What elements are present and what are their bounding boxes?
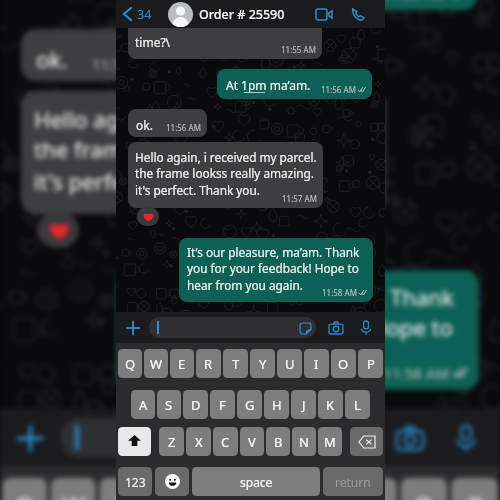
staticText: E xyxy=(178,355,186,373)
staticText: I xyxy=(314,355,319,373)
button[interactable]: Camera xyxy=(326,318,346,338)
button[interactable]: P xyxy=(358,349,383,378)
staticText: L xyxy=(354,396,361,414)
button[interactable]: Attach xyxy=(13,422,47,455)
button[interactable]: At 1pm ma’am. xyxy=(217,69,372,99)
button[interactable]: Attach xyxy=(124,319,142,337)
button[interactable]: E xyxy=(170,349,194,378)
button[interactable]: O xyxy=(331,349,356,378)
staticText: R xyxy=(163,489,180,500)
button[interactable]: I xyxy=(304,349,329,378)
button[interactable]: N xyxy=(292,427,316,456)
button[interactable]: Hello again, i received my parcel. the f… xyxy=(128,142,323,208)
staticText: M xyxy=(324,433,336,451)
button[interactable]: Back, 34 unread chats xyxy=(120,0,155,28)
staticText: return xyxy=(335,474,371,490)
staticText: Hello again, i received my parcel. the f… xyxy=(34,104,374,197)
button[interactable]: E xyxy=(99,478,144,500)
button[interactable]: return xyxy=(323,467,383,496)
button[interactable]: U xyxy=(277,349,302,378)
button[interactable]: W xyxy=(51,478,96,500)
staticText: 11:56 AM xyxy=(321,84,356,95)
button[interactable]: It’s our pleasure, ma’am. Thank you for … xyxy=(179,238,373,302)
staticText: 11:57 AM xyxy=(309,186,374,207)
button[interactable]: T xyxy=(199,478,245,500)
staticText: W xyxy=(150,355,163,373)
staticText: E xyxy=(114,489,129,500)
staticText: 11:56 AM xyxy=(166,122,201,133)
staticText: 34 xyxy=(137,6,152,23)
button[interactable]: J xyxy=(291,390,316,419)
button[interactable]: P xyxy=(451,478,498,500)
staticText: F xyxy=(219,396,226,414)
button[interactable]: O xyxy=(401,478,447,500)
button[interactable]: T xyxy=(223,349,248,378)
button[interactable]: F xyxy=(210,390,235,419)
staticText: U xyxy=(315,489,333,500)
button[interactable]: Emoji xyxy=(155,467,189,496)
button[interactable]: It’s our pleasure, ma’am. Thank you for … xyxy=(116,270,479,390)
button[interactable]: H xyxy=(264,390,289,419)
button[interactable]: D xyxy=(183,390,208,419)
button[interactable]: V xyxy=(240,427,264,456)
button[interactable]: G xyxy=(237,390,262,419)
button[interactable]: K xyxy=(318,390,343,419)
button[interactable]: Hello again, i received my parcel. the f… xyxy=(21,91,386,214)
button[interactable]: I xyxy=(350,478,397,500)
staticText: J xyxy=(302,396,306,414)
button[interactable]: C xyxy=(213,427,238,456)
staticText: U xyxy=(285,355,295,373)
button[interactable]: Y xyxy=(250,349,275,378)
button[interactable]: Stickers xyxy=(60,418,373,457)
button[interactable]: space xyxy=(192,467,320,496)
button[interactable]: ok. xyxy=(128,109,207,137)
button[interactable]: Backspace xyxy=(350,427,383,456)
button[interactable]: U xyxy=(300,478,346,500)
button[interactable]: Heart reaction xyxy=(38,212,79,248)
button[interactable]: R xyxy=(196,349,221,378)
staticText: Q xyxy=(125,355,136,373)
button[interactable]: Y xyxy=(249,478,296,500)
staticText: P xyxy=(468,489,483,500)
staticText: X xyxy=(195,433,203,451)
button[interactable]: L xyxy=(345,390,370,419)
button[interactable]: Z xyxy=(159,427,184,456)
button[interactable]: S xyxy=(157,390,181,419)
button[interactable]: ok. xyxy=(21,29,169,81)
button[interactable]: Voice message xyxy=(447,420,485,457)
button[interactable]: X xyxy=(186,427,211,456)
button[interactable]: Voice message xyxy=(356,318,376,338)
button[interactable]: Voice call xyxy=(347,3,369,25)
button[interactable]: Video call xyxy=(313,3,335,25)
button[interactable]: Heart reaction xyxy=(137,207,159,226)
staticText: O xyxy=(338,355,349,373)
button[interactable]: 123 xyxy=(118,467,152,496)
button[interactable]: Camera xyxy=(391,420,429,457)
button[interactable]: Order # 25590 xyxy=(199,6,285,23)
staticText: space xyxy=(240,474,273,490)
button[interactable]: time?\ xyxy=(128,12,322,59)
button[interactable]: Q xyxy=(2,478,47,500)
button[interactable]: Q xyxy=(118,349,142,378)
staticText: V xyxy=(248,433,256,451)
button[interactable]: Contact avatar xyxy=(168,2,193,27)
other: Stickers xyxy=(341,427,363,450)
other: Stickers xyxy=(299,322,311,334)
staticText: Q xyxy=(15,489,36,500)
staticText: Hello again, i received my parcel. the f… xyxy=(135,149,317,199)
staticText: Z xyxy=(168,433,176,451)
button[interactable]: B xyxy=(266,427,290,456)
button[interactable]: M xyxy=(318,427,342,456)
staticText: G xyxy=(245,396,255,414)
button[interactable]: Shift xyxy=(118,427,151,456)
staticText: 11:55 AM xyxy=(281,44,316,55)
button[interactable]: R xyxy=(148,478,195,500)
button[interactable]: Stickers xyxy=(149,317,316,338)
button[interactable]: At 1pm ma’am. xyxy=(187,0,477,10)
staticText: It’s our pleasure, ma’am. Thank you for … xyxy=(187,244,360,294)
staticText: K xyxy=(326,396,335,414)
staticText: 123 xyxy=(125,474,146,490)
button[interactable]: W xyxy=(144,349,168,378)
button[interactable]: A xyxy=(131,390,155,419)
staticText: C xyxy=(221,433,230,451)
